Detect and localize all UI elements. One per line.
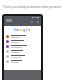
staticText: e (28, 27, 31, 32)
staticText: g (23, 27, 26, 32)
button[interactable] (4, 59, 41, 64)
staticText: o (17, 27, 20, 32)
staticText: l (26, 27, 28, 32)
button[interactable] (4, 39, 41, 44)
staticText: o (20, 27, 23, 32)
staticText: G (14, 27, 17, 32)
button[interactable] (4, 44, 41, 49)
staticText: Check your activity and browse what you … (0, 5, 64, 9)
button[interactable] (4, 49, 41, 54)
button[interactable] (4, 34, 41, 39)
other: Status icons (32, 17, 39, 18)
button[interactable] (4, 54, 41, 59)
